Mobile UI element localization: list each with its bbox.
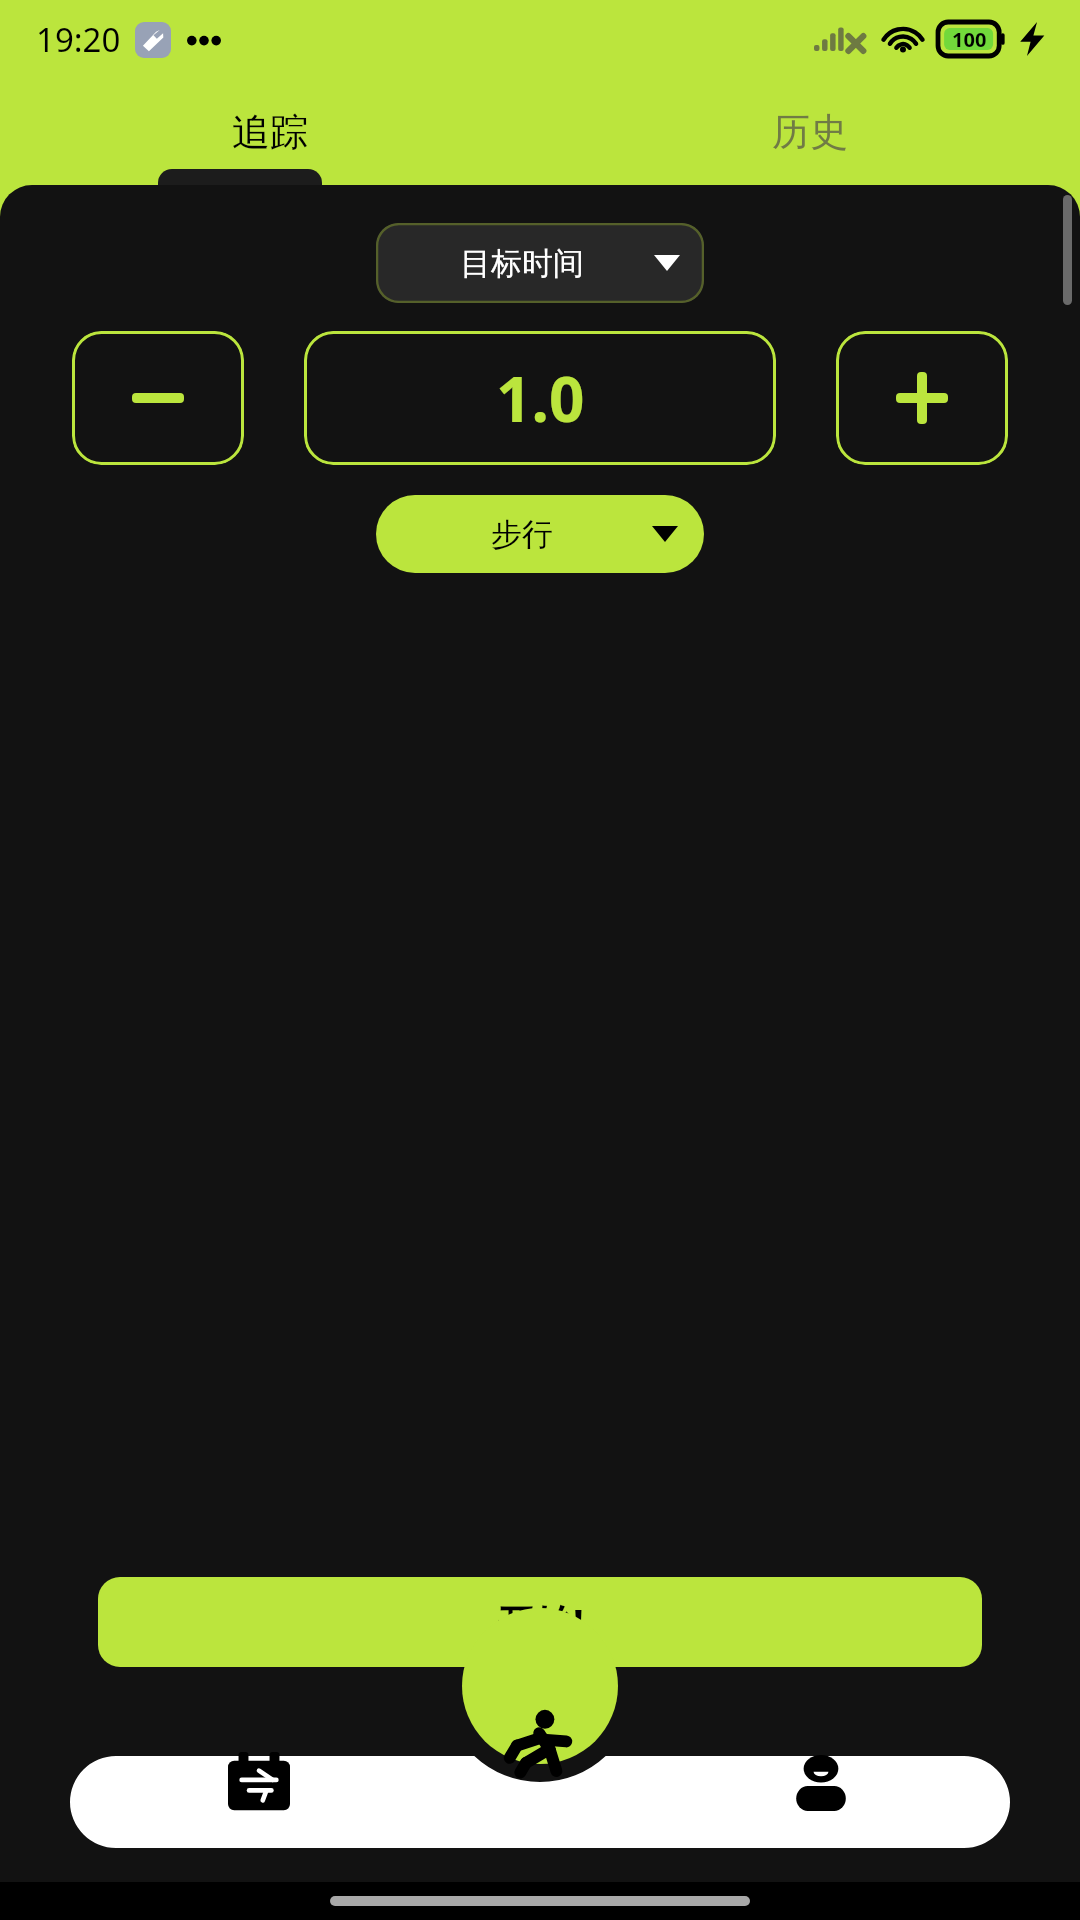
button[interactable]: 历史 — [540, 78, 1080, 185]
button[interactable]: Start run — [462, 1670, 618, 1826]
button[interactable]: 开始! — [98, 1577, 982, 1667]
button[interactable]: 1.0 — [304, 331, 776, 465]
staticText: 目标时间 — [460, 244, 584, 283]
button[interactable]: Profile — [768, 1730, 874, 1836]
button[interactable]: Increase — [836, 331, 1008, 465]
staticText: 步行 — [491, 515, 553, 554]
staticText: 历史 — [772, 108, 848, 156]
button[interactable]: 目标时间 — [376, 223, 704, 303]
button[interactable]: Decrease — [72, 331, 244, 465]
staticText: 19:20 — [36, 17, 121, 62]
staticText: 开始! — [497, 1596, 584, 1648]
button[interactable]: Today — [206, 1730, 312, 1836]
staticText: 1.0 — [496, 356, 585, 440]
staticText: 100 — [952, 26, 987, 53]
button[interactable]: 追踪 — [0, 78, 540, 185]
staticText: 追踪 — [232, 108, 308, 156]
button[interactable]: 步行 — [376, 495, 704, 573]
